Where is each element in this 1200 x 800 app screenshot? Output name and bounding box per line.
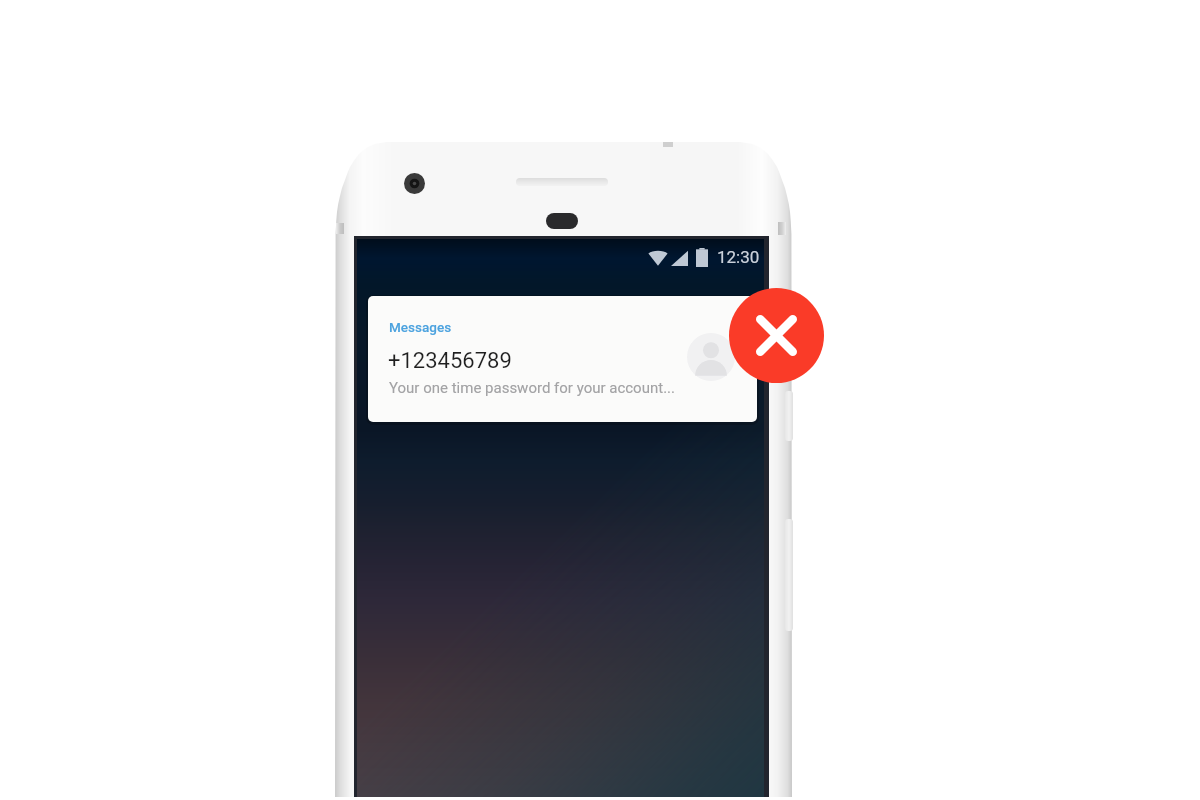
staticText: Messages: [389, 319, 452, 335]
button[interactable]: Power button: [785, 391, 793, 441]
staticText: Your one time password for your account.…: [389, 379, 676, 397]
staticText: +123456789: [388, 348, 512, 374]
button[interactable]: Messages: [368, 296, 757, 422]
button[interactable]: Dismiss notification: [729, 288, 824, 383]
staticText: 12:30: [717, 247, 760, 267]
button[interactable]: Volume buttons: [785, 519, 793, 631]
